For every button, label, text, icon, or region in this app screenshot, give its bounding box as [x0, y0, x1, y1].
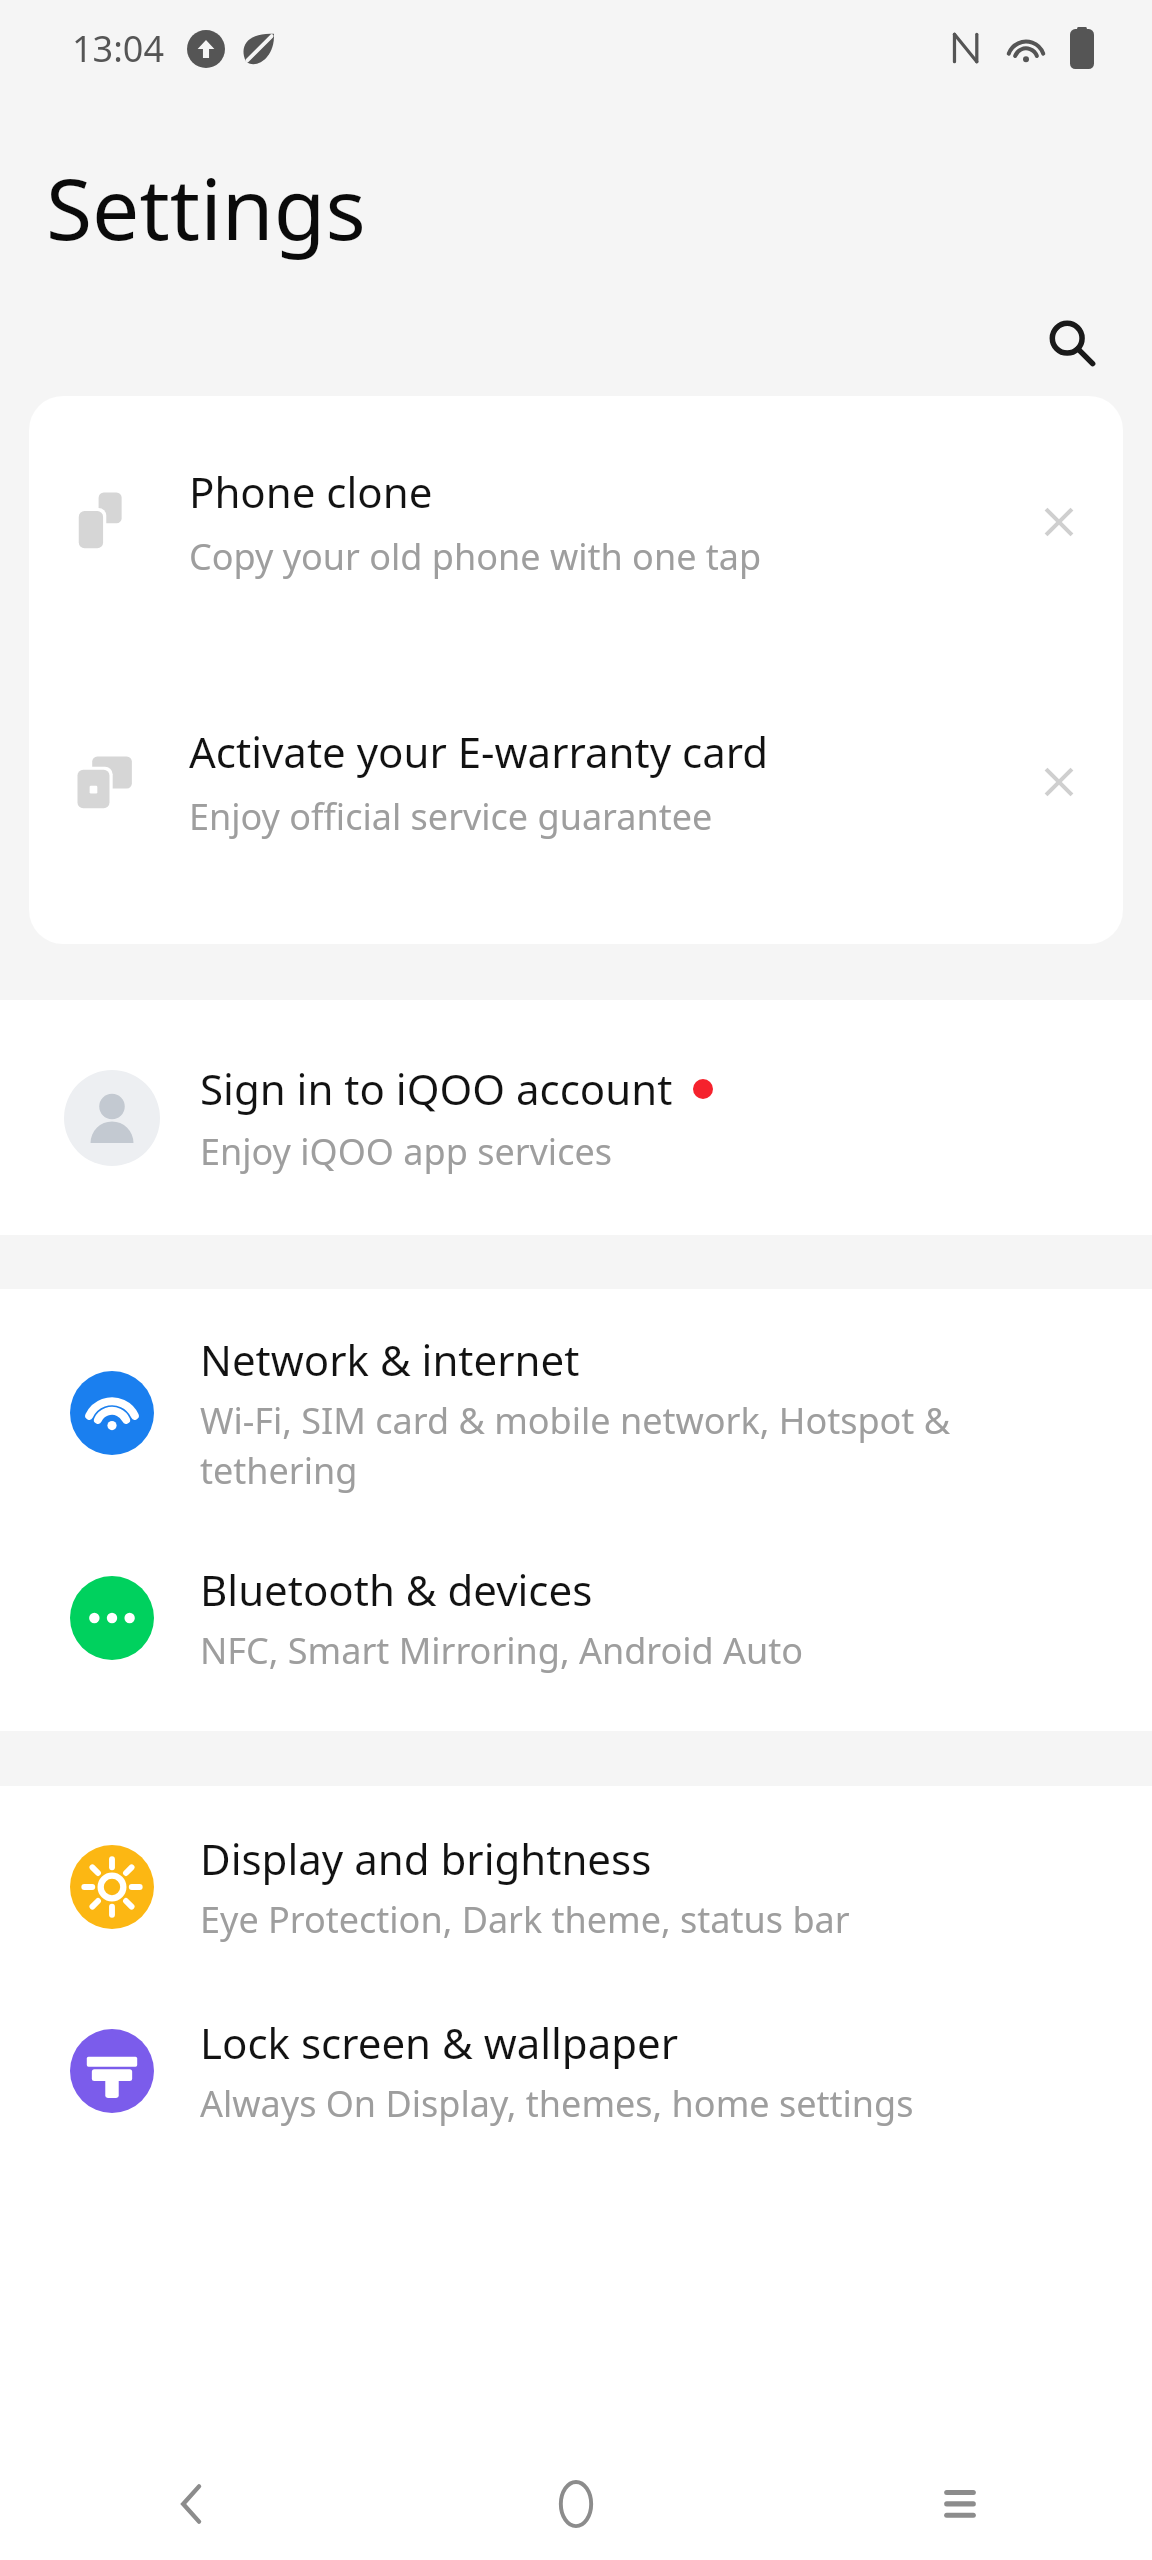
staticText: Sign in to iQOO account [200, 1060, 673, 1117]
staticText: Bluetooth & devices [200, 1561, 593, 1618]
button[interactable]: Bluetooth & devices [0, 1541, 1152, 1695]
button[interactable]: Lock screen & wallpaper [0, 1994, 1152, 2148]
staticText: Eye Protection, Dark theme, status bar [200, 1895, 850, 1944]
staticText: Network & internet [200, 1331, 580, 1388]
staticText: Lock screen & wallpaper [200, 2014, 679, 2071]
button[interactable]: Sign in to iQOO account [0, 1000, 1152, 1235]
button[interactable]: Search [1030, 301, 1114, 385]
staticText: NFC, Smart Mirroring, Android Auto [200, 1626, 804, 1675]
staticText: Copy your old phone with one tap [189, 532, 762, 581]
button[interactable]: Dismiss [1011, 474, 1107, 570]
button[interactable]: Recent apps [900, 2448, 1020, 2560]
button[interactable]: Display and brightness [0, 1810, 1152, 1964]
button[interactable]: Activate your E-warranty card [29, 670, 1123, 894]
button[interactable]: Dismiss [1011, 734, 1107, 830]
button[interactable]: Home [516, 2448, 636, 2560]
staticText: Wi-Fi, SIM card & mobile network, Hotspo… [200, 1396, 1072, 1495]
staticText: Phone clone [189, 463, 433, 520]
staticText: 13:04 [72, 24, 165, 73]
staticText: Activate your E-warranty card [189, 723, 769, 780]
button[interactable]: Network & internet [0, 1311, 1152, 1515]
staticText: Enjoy iQOO app services [200, 1127, 612, 1176]
button[interactable]: Phone clone [29, 410, 1123, 634]
button[interactable]: Back [132, 2448, 252, 2560]
staticText: Display and brightness [200, 1830, 652, 1887]
staticText: Always On Display, themes, home settings [200, 2079, 914, 2128]
staticText: Enjoy official service guarantee [189, 792, 713, 841]
staticText: Settings [46, 150, 366, 264]
